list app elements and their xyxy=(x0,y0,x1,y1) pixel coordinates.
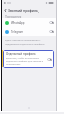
button[interactable]: Telegram xyxy=(2,27,56,36)
staticText: поддержкой отдельного профиля xyxy=(5,42,45,45)
staticText: WhatsApp xyxy=(11,21,25,25)
staticText: Включите, чтобы использовать отдельный п… xyxy=(6,57,46,66)
staticText: Отдельный профиль xyxy=(6,52,36,56)
staticText: Приложения xyxy=(5,15,22,19)
button[interactable]: WhatsApp xyxy=(2,18,56,27)
button[interactable]: Назад xyxy=(3,8,8,13)
button[interactable]: Отдельный профиль xyxy=(3,50,54,68)
staticText: Здесь показаны приложения с xyxy=(5,38,41,41)
staticText: Telegram xyxy=(11,30,24,34)
button[interactable]: Переключатель xyxy=(47,58,52,61)
staticText: Звонкий профиль, звонки… xyxy=(8,8,54,12)
button[interactable]: Переключатель xyxy=(49,30,54,33)
button[interactable]: Переключатель xyxy=(49,21,54,24)
